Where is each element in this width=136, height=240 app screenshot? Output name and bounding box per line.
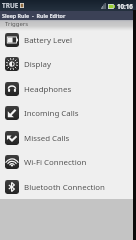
button[interactable]: Wi-Fi Connection xyxy=(0,150,136,174)
staticText: Headphones xyxy=(24,84,72,95)
button[interactable]: Display xyxy=(0,52,136,76)
staticText: Sleep Rule - Rule Editor xyxy=(2,12,66,19)
button[interactable]: Battery Level xyxy=(0,27,136,52)
staticText: 10:16 xyxy=(117,2,133,10)
staticText: Bluetooth Connection xyxy=(24,182,105,193)
staticText: Display xyxy=(24,59,51,70)
staticText: Wi-Fi Connection xyxy=(24,157,87,168)
staticText: TRUE xyxy=(2,1,19,10)
staticText: Battery Level xyxy=(24,35,72,46)
button[interactable]: Incoming Calls xyxy=(0,101,136,125)
staticText: Missed Calls xyxy=(24,133,70,144)
staticText: Incoming Calls xyxy=(24,108,79,119)
button[interactable]: Headphones xyxy=(0,76,136,101)
button[interactable]: Missed Calls xyxy=(0,125,136,150)
button[interactable]: Bluetooth Connection xyxy=(0,174,136,199)
staticText: Triggers xyxy=(5,20,29,28)
